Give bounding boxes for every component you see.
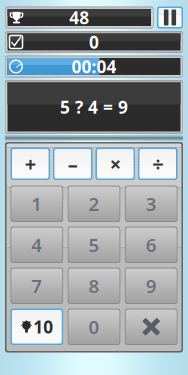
staticText: 3 (146, 191, 157, 216)
button[interactable]: 10 (10, 308, 63, 345)
button[interactable]: Clear (125, 308, 177, 345)
button[interactable]: 7 (10, 267, 63, 304)
staticText: 2 (88, 191, 99, 216)
staticText: ÷ (152, 150, 163, 177)
staticText: 48 (69, 6, 89, 29)
staticText: 5 ? 4 = 9 (60, 95, 128, 118)
button[interactable]: 4 (10, 226, 63, 263)
button[interactable]: 8 (68, 267, 120, 304)
staticText: 0 (88, 314, 99, 339)
staticText: 10 (33, 315, 53, 338)
button[interactable]: × (95, 147, 135, 180)
button[interactable]: + (10, 147, 50, 180)
button[interactable]: 1 (10, 185, 63, 222)
staticText: × (110, 150, 121, 177)
button[interactable]: 5 (68, 226, 120, 263)
staticText: 4 (31, 232, 42, 257)
button[interactable]: ÷ (138, 147, 177, 180)
button[interactable]: 9 (125, 267, 177, 304)
button[interactable]: – (53, 147, 92, 180)
staticText: 7 (31, 273, 42, 298)
staticText: + (25, 150, 36, 177)
staticText: 6 (146, 232, 157, 257)
staticText: 0 (89, 30, 99, 53)
staticText: 1 (31, 191, 42, 216)
button[interactable]: Pause (157, 6, 183, 28)
button[interactable]: 6 (125, 226, 177, 263)
staticText: – (68, 150, 78, 177)
button[interactable]: 0 (68, 308, 120, 345)
staticText: 5 (88, 232, 99, 257)
staticText: 00:04 (71, 55, 116, 78)
button[interactable]: 3 (125, 185, 177, 222)
staticText: 8 (88, 273, 99, 298)
button[interactable]: 2 (68, 185, 120, 222)
staticText: 9 (146, 273, 157, 298)
